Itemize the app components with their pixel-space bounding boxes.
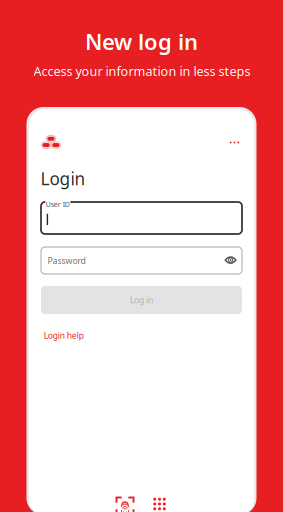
staticText: New log in xyxy=(85,26,198,56)
button[interactable]: More options xyxy=(222,132,246,152)
staticText: Log in xyxy=(130,294,153,306)
staticText: Access your information in less steps xyxy=(33,62,250,80)
staticText: Login help xyxy=(44,330,84,341)
staticText: Password xyxy=(48,254,86,266)
button[interactable]: Log in xyxy=(41,286,242,314)
button[interactable]: Show password xyxy=(225,255,237,264)
staticText: User ID xyxy=(46,200,70,209)
button[interactable]: Keypad login xyxy=(153,498,166,510)
button[interactable]: Login help xyxy=(44,328,92,342)
button[interactable]: Fingerprint login xyxy=(115,496,134,512)
button[interactable]: User ID xyxy=(41,202,242,234)
staticText: Login xyxy=(41,167,86,190)
